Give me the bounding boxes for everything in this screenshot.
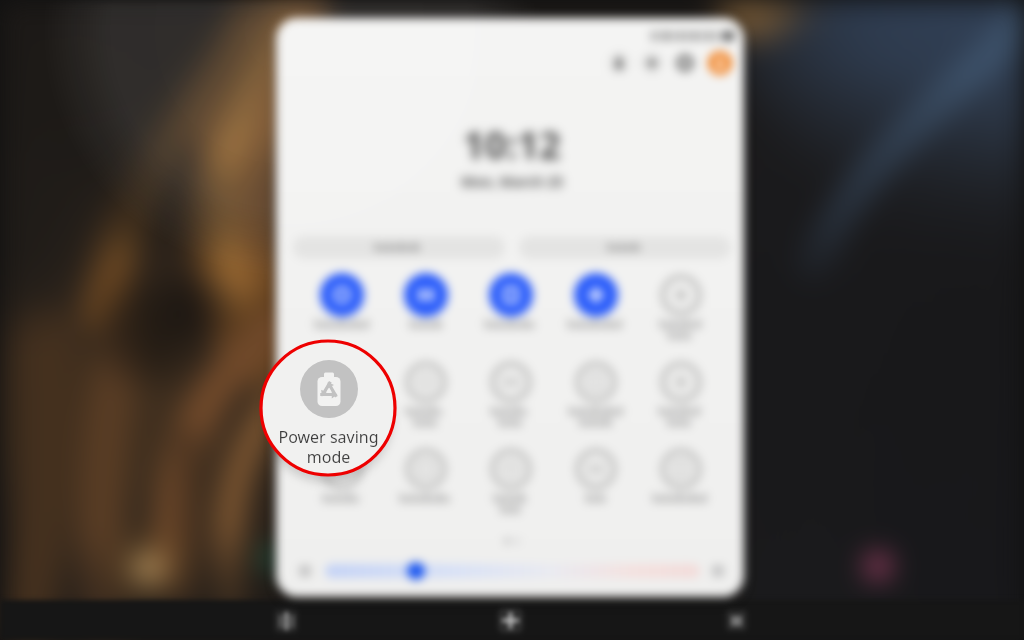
staticText: 10:12 [463,118,561,170]
button[interactable]: Power saving mode [261,341,395,475]
staticText: Mon, March 25 [461,172,564,191]
staticText: Power saving mode [278,426,379,467]
